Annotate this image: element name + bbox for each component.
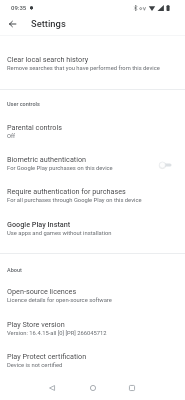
staticText: Device is not certified	[7, 362, 63, 369]
staticText: Parental controls	[7, 123, 62, 131]
staticText: Licence details for open-source software	[7, 297, 112, 304]
button[interactable]: Navigate up	[0, 13, 25, 34]
staticText: For all purchases through Google Play on…	[7, 197, 142, 204]
button[interactable]: Open-source licences	[0, 287, 185, 311]
button[interactable]: Biometric authentication	[0, 155, 185, 179]
button[interactable]: Require authentication for purchases	[0, 187, 185, 211]
staticText: Google Play Instant	[7, 220, 71, 228]
staticText: Open-source licences	[7, 287, 77, 295]
staticText: User controls	[7, 101, 40, 107]
staticText: Play Protect certification	[7, 352, 87, 360]
staticText: Remove searches that you have performed …	[7, 65, 160, 72]
staticText: 09:35	[11, 4, 27, 11]
staticText: Version: 16.4.15-all [0] [PR] 266045712	[7, 330, 107, 337]
staticText: Use apps and games without installation	[7, 230, 112, 237]
button[interactable]: Parental controls	[0, 123, 185, 147]
button[interactable]: Home	[82, 377, 104, 399]
button[interactable]: Play Store version	[0, 320, 185, 344]
staticText: For Google Play purchases on this device	[7, 165, 113, 172]
button[interactable]: Recent apps	[121, 377, 143, 399]
staticText: Play Store version	[7, 320, 65, 328]
button[interactable]: Google Play Instant	[0, 220, 185, 244]
staticText: Off	[7, 133, 16, 140]
button[interactable]: Back	[41, 377, 63, 399]
staticText: Biometric authentication	[7, 155, 87, 163]
staticText: About	[7, 267, 22, 273]
staticText: Require authentication for purchases	[7, 187, 126, 195]
button[interactable]: Play Protect certification	[0, 352, 185, 376]
staticText: Settings	[31, 18, 66, 29]
button[interactable]: Biometric authentication	[157, 159, 173, 171]
button[interactable]: Clear local search history	[0, 55, 185, 79]
staticText: Clear local search history	[7, 55, 89, 63]
